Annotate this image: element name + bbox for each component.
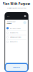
staticText: Inbox zero <box>10 41 18 43</box>
staticText: Today <box>7 23 12 24</box>
button[interactable]: Inbox zero <box>7 40 26 44</box>
staticText: Plan With Purpose <box>2 2 30 6</box>
staticText: Design sync <box>10 32 19 34</box>
button[interactable]: Write weekly notes <box>7 35 26 39</box>
button[interactable]: Morning review <box>7 26 26 30</box>
staticText: Wednesday <box>7 21 16 23</box>
staticText: A calmer way to run your day <box>6 7 26 9</box>
staticText: Morning review <box>10 27 21 29</box>
staticText: Add Task <box>13 67 20 68</box>
button[interactable]: Profile <box>23 21 26 24</box>
button[interactable]: Add Task <box>5 63 28 71</box>
button[interactable]: Design sync <box>7 31 26 35</box>
staticText: Write weekly notes <box>10 36 22 38</box>
staticText: 9:41 <box>7 15 10 17</box>
